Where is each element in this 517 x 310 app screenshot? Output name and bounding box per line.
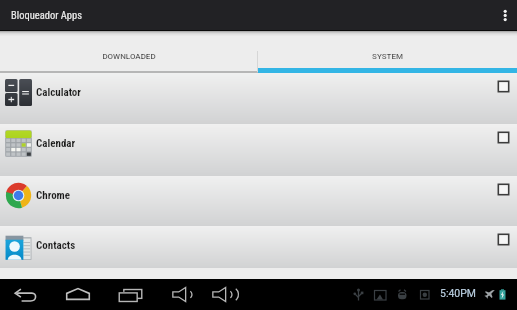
staticText: DOWNLOADED <box>102 52 156 61</box>
button[interactable]: Volume up <box>212 287 233 302</box>
button[interactable]: Recent apps <box>119 289 142 302</box>
button[interactable]: Select Calendar <box>492 126 514 148</box>
button[interactable]: More options <box>490 0 517 30</box>
button[interactable]: Chrome <box>0 176 517 226</box>
button[interactable]: Home <box>66 288 90 300</box>
button[interactable]: Back <box>14 286 37 303</box>
staticText: Contacts <box>36 239 76 252</box>
button[interactable]: SYSTEM <box>258 36 517 73</box>
button[interactable]: Calculator <box>0 73 517 124</box>
button[interactable]: Select Contacts <box>492 228 514 250</box>
staticText: Calculator <box>36 86 81 99</box>
button[interactable]: Volume down <box>172 287 193 302</box>
staticText: Bloqueador Apps <box>11 9 82 21</box>
button[interactable]: Calendar <box>0 124 517 176</box>
button[interactable]: Contacts <box>0 226 517 268</box>
staticText: Chrome <box>36 189 71 202</box>
button[interactable]: Select Chrome <box>492 178 514 200</box>
staticText: Calendar <box>36 137 76 150</box>
staticText: SYSTEM <box>372 52 403 61</box>
button[interactable]: DOWNLOADED <box>0 36 258 73</box>
button[interactable]: Select Calculator <box>492 75 514 97</box>
staticText: 5:40PM <box>440 287 477 299</box>
